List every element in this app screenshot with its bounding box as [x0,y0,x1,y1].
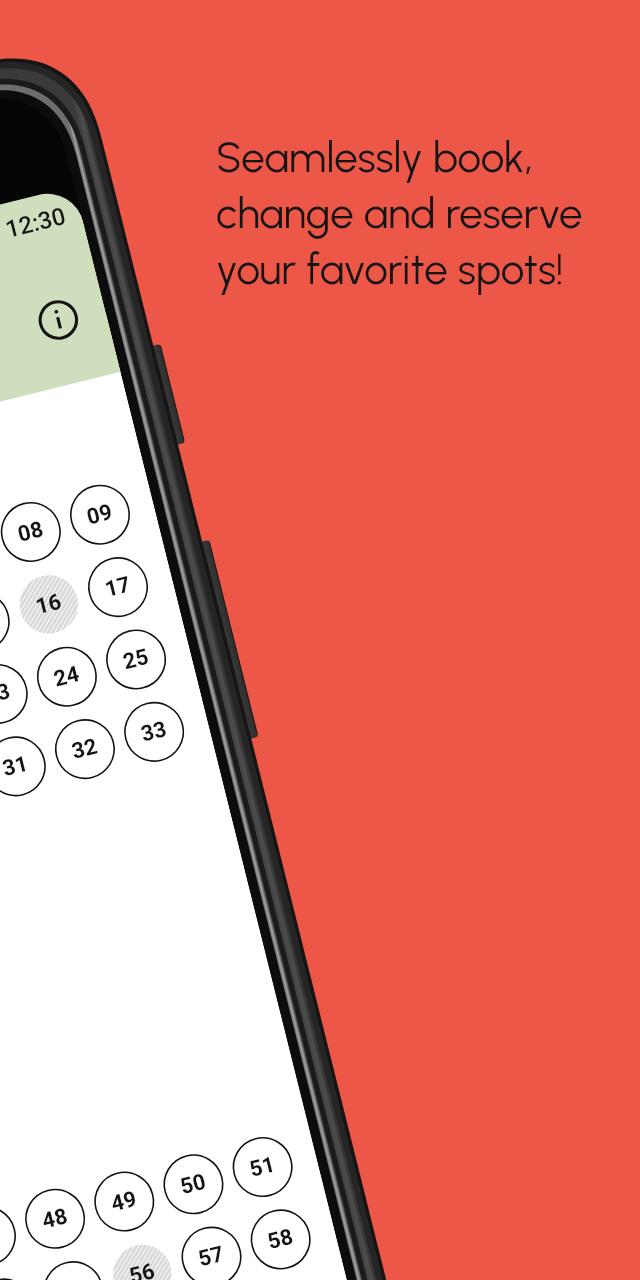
staticText: Seamlessly book, change and reserve your… [216,132,583,295]
